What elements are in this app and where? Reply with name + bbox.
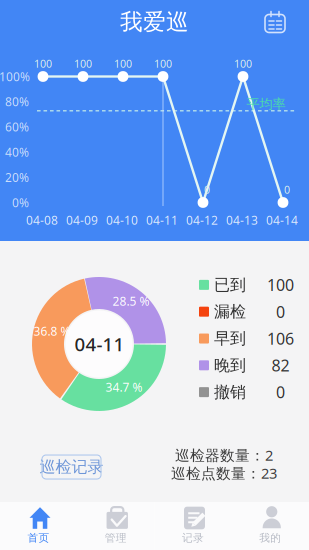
staticText: 100 [154,56,172,71]
staticText: 0 [204,182,210,197]
staticText: 晚到 [214,355,246,375]
staticText: 100% [0,68,30,84]
staticText: 早到 [214,329,246,348]
staticText: 0 [276,301,285,322]
button[interactable]: 巡检记录 [42,455,101,479]
staticText: 100 [34,56,52,71]
staticText: 巡检器数量：2 [175,445,273,465]
staticText: 04-11 [146,212,178,228]
button[interactable]: 我的 [232,502,309,550]
staticText: 记录 [182,531,204,544]
staticText: 首页 [28,531,50,544]
staticText: 巡检点数量：23 [171,463,277,483]
staticText: 我的 [259,531,281,544]
button[interactable]: 管理 [77,502,154,550]
staticText: 撤销 [214,382,246,402]
staticText: 我爱巡 [120,8,189,36]
staticText: 04-10 [106,212,138,228]
staticText: 40% [5,144,29,160]
staticText: 34.7 % [105,379,142,395]
staticText: 0 [276,381,285,403]
staticText: 巡检记录 [39,457,103,477]
staticText: 04-13 [226,212,258,228]
staticText: 04-11 [74,332,124,356]
button[interactable]: 首页 [0,502,77,550]
staticText: 100 [114,56,132,71]
staticText: 管理 [105,531,127,544]
staticText: 36.8 % [33,323,70,339]
staticText: 平均率 [246,96,285,112]
staticText: 82 [271,355,289,376]
staticText: 04-08 [26,212,58,228]
staticText: 100 [267,274,294,295]
staticText: 28.5 % [112,293,149,309]
staticText: 0% [12,194,29,210]
staticText: 20% [5,169,29,185]
staticText: 04-14 [266,212,298,228]
staticText: 漏检 [214,302,246,322]
staticText: 100 [74,56,92,71]
button[interactable]: 记录 [154,502,232,550]
button[interactable]: Calendar [258,5,292,39]
staticText: 已到 [214,275,246,295]
staticText: 04-09 [66,212,98,228]
staticText: 04-12 [186,212,218,228]
staticText: 0 [284,182,290,197]
staticText: 60% [5,119,29,135]
staticText: 100 [234,56,252,71]
staticText: 106 [267,328,294,349]
staticText: 80% [5,94,29,110]
